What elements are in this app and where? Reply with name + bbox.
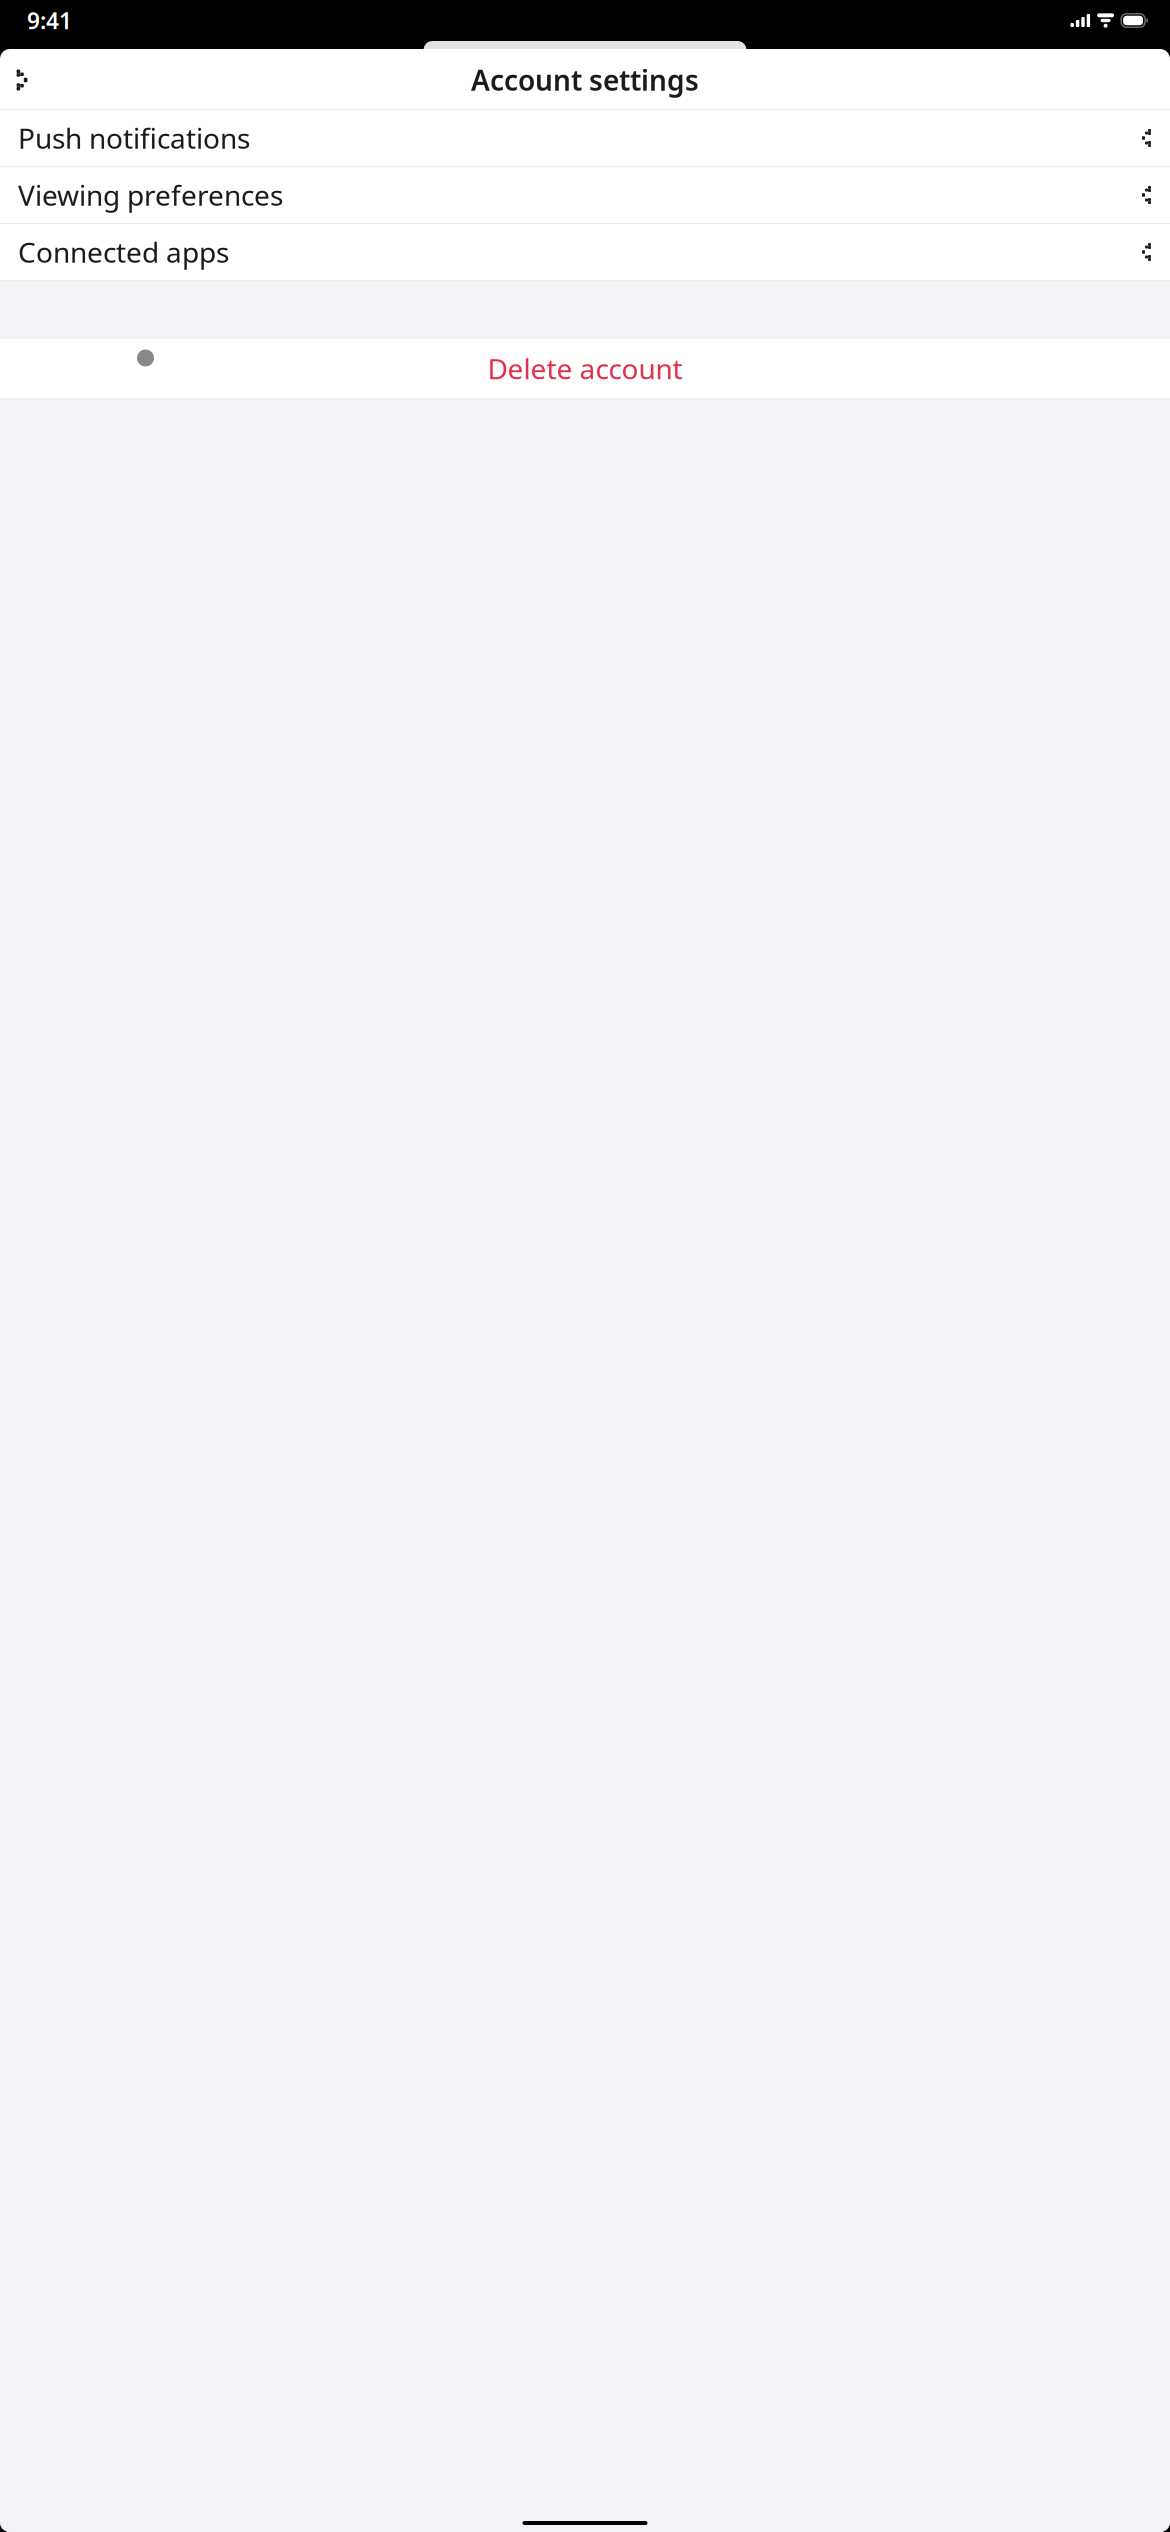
staticText: 9:41 (27, 5, 72, 35)
staticText: Account settings (471, 61, 699, 99)
staticText: Connected apps (18, 233, 229, 271)
staticText: Viewing preferences (18, 176, 283, 214)
button[interactable]: Viewing preferences (0, 167, 1170, 223)
button[interactable]: Push notifications (0, 110, 1170, 166)
staticText: Delete account (487, 350, 682, 387)
staticText: Push notifications (18, 119, 250, 157)
button[interactable]: Back (1, 59, 43, 101)
button[interactable]: Delete account (0, 339, 1170, 398)
button[interactable]: Connected apps (0, 224, 1170, 280)
